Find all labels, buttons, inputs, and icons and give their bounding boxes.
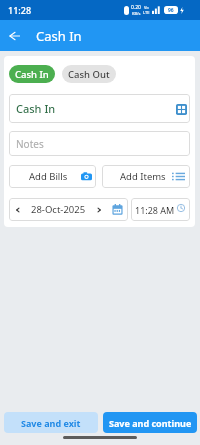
button[interactable]: 11:28 AM — [131, 198, 190, 221]
staticText: 96 — [168, 7, 174, 14]
staticText: Cash Out — [68, 68, 110, 81]
staticText: Save and exit — [21, 417, 81, 429]
staticText: 11:28 AM — [135, 204, 175, 216]
button[interactable]: Back — [5, 26, 24, 45]
button[interactable]: Cash In — [9, 65, 55, 83]
button[interactable]: Save and exit — [4, 412, 98, 433]
staticText: 11:28 — [8, 4, 32, 16]
staticText: Save and continue — [109, 417, 192, 429]
button[interactable]: Save and continue — [103, 412, 197, 433]
button[interactable]: Cash In — [9, 94, 190, 123]
staticText: Notes — [16, 137, 44, 151]
staticText: Cash In — [15, 68, 49, 81]
staticText: Add Bills — [29, 170, 68, 183]
staticText: Vo — [144, 5, 149, 10]
button[interactable]: Add Items — [102, 165, 190, 188]
staticText: Add Items — [120, 170, 166, 183]
staticText: Cash In — [36, 27, 82, 45]
button[interactable]: Notes — [9, 131, 190, 156]
staticText: Cash In — [16, 101, 56, 116]
staticText: KB/s — [132, 11, 141, 16]
staticText: LTE — [143, 10, 150, 15]
staticText: 28-Oct-2025 — [31, 203, 86, 216]
button[interactable]: Calculator — [175, 103, 187, 115]
staticText: 0.20 — [131, 4, 141, 11]
button[interactable]: Add Bills — [9, 165, 96, 188]
button[interactable]: Cash Out — [62, 65, 116, 83]
button[interactable]: 28-Oct-2025 — [9, 198, 128, 221]
